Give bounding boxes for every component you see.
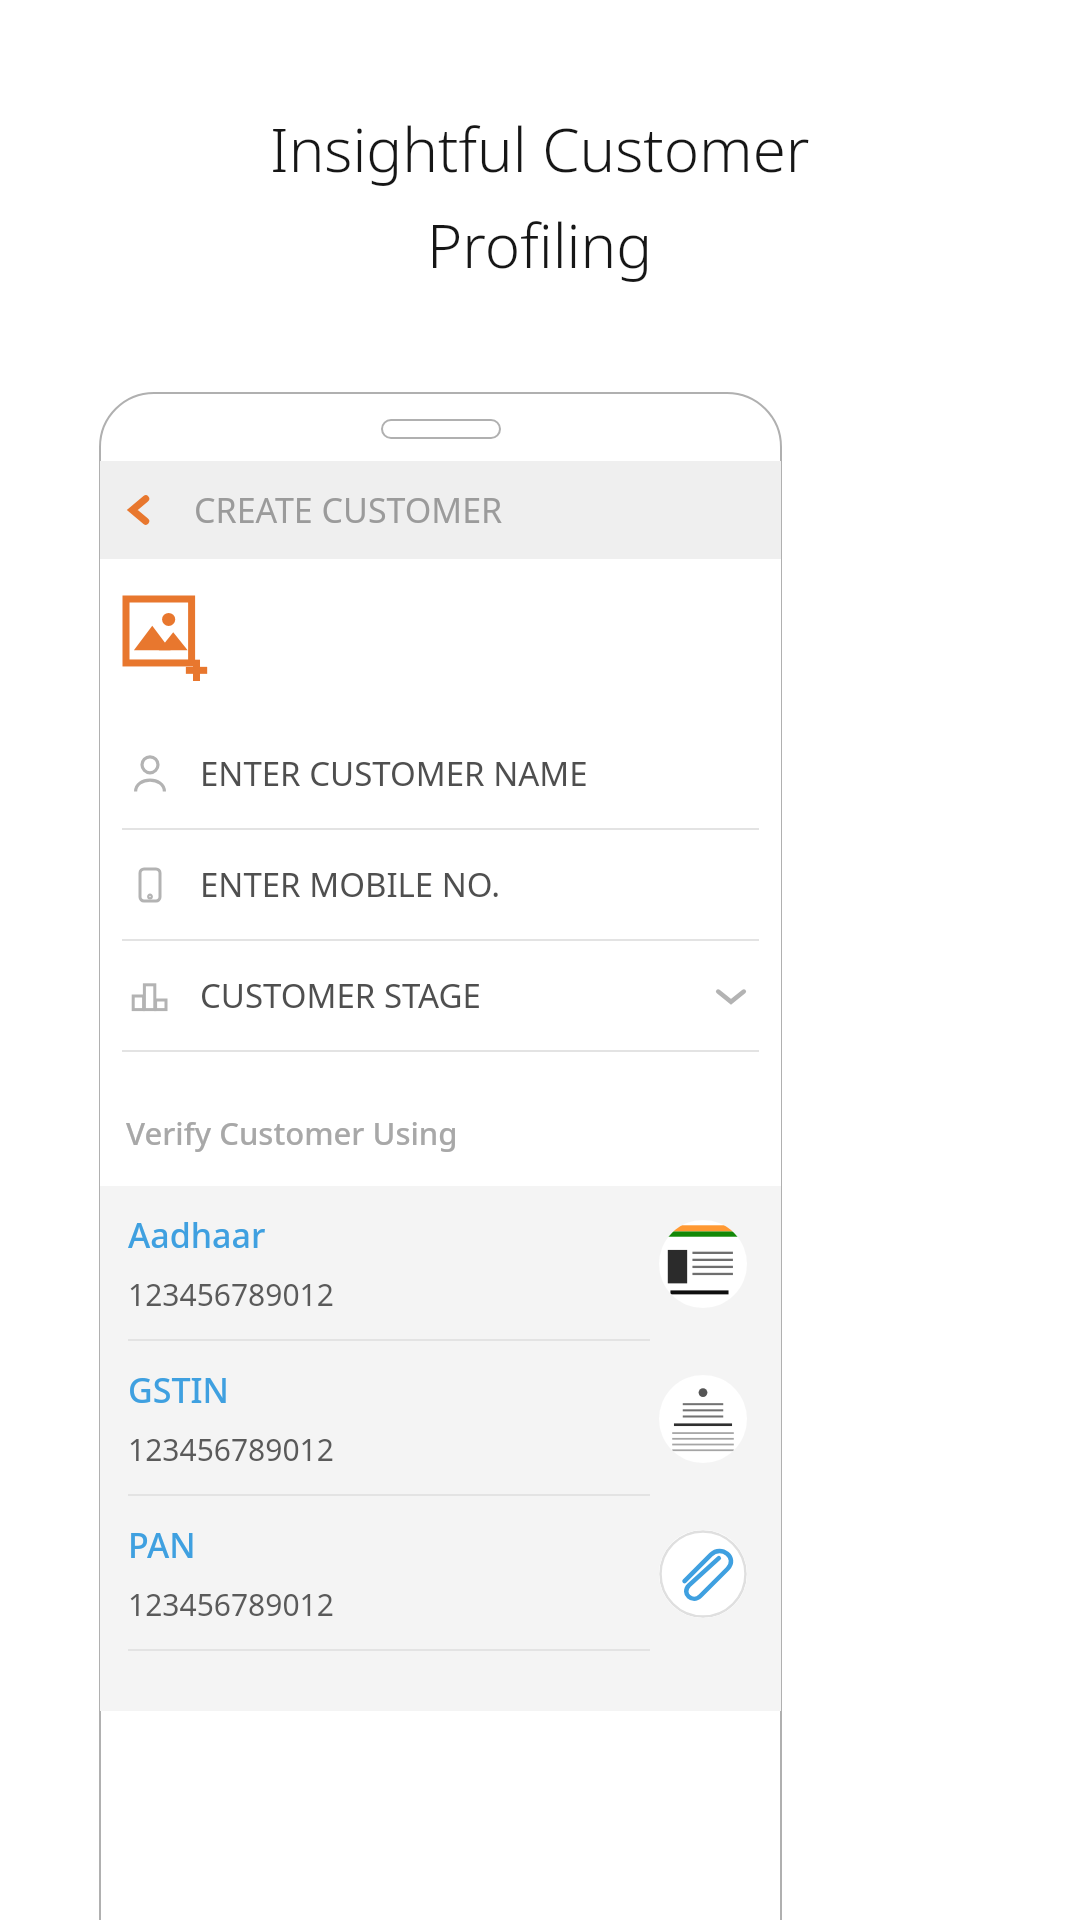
staticText: 123456789012 bbox=[128, 1274, 334, 1315]
staticText: ENTER CUSTOMER NAME bbox=[200, 751, 588, 796]
staticText: Insightful Customer bbox=[270, 108, 810, 190]
button[interactable]: PAN bbox=[100, 1496, 781, 1651]
staticText: 123456789012 bbox=[128, 1429, 334, 1470]
staticText: Profiling bbox=[427, 204, 653, 286]
staticText: CREATE CUSTOMER bbox=[194, 487, 503, 533]
staticText: GSTIN bbox=[128, 1367, 229, 1413]
other: Attachment bbox=[659, 1220, 747, 1308]
button[interactable]: Back bbox=[108, 479, 170, 541]
staticText: Aadhaar bbox=[128, 1212, 266, 1258]
button[interactable]: GSTIN bbox=[100, 1341, 781, 1496]
other: Attachment bbox=[659, 1530, 747, 1618]
staticText: CUSTOMER STAGE bbox=[200, 973, 481, 1018]
staticText: 123456789012 bbox=[128, 1584, 334, 1625]
staticText: PAN bbox=[128, 1522, 196, 1568]
other: Expand bbox=[715, 980, 747, 1012]
button[interactable]: Add photo bbox=[126, 599, 208, 681]
button[interactable]: CUSTOMER STAGE bbox=[100, 941, 781, 1052]
button[interactable]: ENTER CUSTOMER NAME bbox=[100, 719, 781, 830]
other: Attachment bbox=[659, 1375, 747, 1463]
staticText: Verify Customer Using bbox=[126, 1112, 458, 1154]
staticText: ENTER MOBILE NO. bbox=[200, 862, 501, 907]
button[interactable]: ENTER MOBILE NO. bbox=[100, 830, 781, 941]
button[interactable]: Aadhaar bbox=[100, 1186, 781, 1341]
